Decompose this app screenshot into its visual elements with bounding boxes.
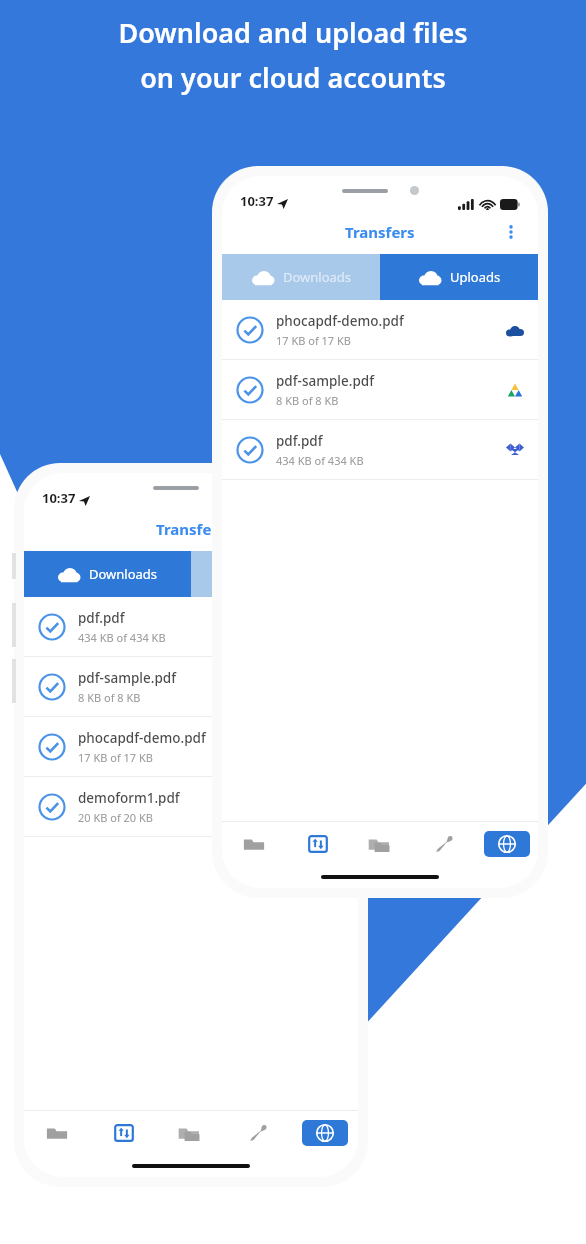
staticText: Download and upload files — [118, 14, 468, 51]
staticText: pdf.pdf — [78, 609, 125, 627]
staticText: 10:37 — [42, 489, 76, 507]
button[interactable]: Files — [24, 1111, 90, 1155]
button[interactable]: Settings — [224, 1111, 291, 1155]
button[interactable]: demoform1.pdf — [24, 777, 358, 837]
staticText: 17 KB of 17 KB — [78, 750, 153, 765]
staticText: demoform1.pdf — [78, 789, 180, 807]
staticText: pdf-sample.pdf — [78, 669, 176, 687]
button[interactable]: Downloads — [24, 551, 191, 597]
button[interactable]: Browser — [484, 831, 530, 857]
button[interactable]: pdf-sample.pdf — [222, 360, 538, 420]
staticText: Transfers — [156, 519, 226, 539]
staticText: phocapdf-demo.pdf — [78, 729, 206, 747]
button[interactable]: Remote files — [349, 822, 412, 866]
staticText: 20 KB of 20 KB — [78, 810, 153, 825]
staticText: Transfers — [345, 222, 415, 242]
staticText: 434 KB of 434 KB — [276, 453, 364, 468]
staticText: Uploads — [450, 268, 501, 286]
staticText: phocapdf-demo.pdf — [276, 312, 404, 330]
staticText: 8 KB of 8 KB — [78, 690, 141, 705]
button[interactable]: Remote files — [157, 1111, 224, 1155]
button[interactable]: Uploads — [191, 551, 358, 597]
button[interactable]: Files — [222, 822, 286, 866]
button[interactable]: Browser — [302, 1120, 348, 1146]
button[interactable]: pdf.pdf — [222, 420, 538, 480]
button[interactable]: Settings — [412, 822, 475, 866]
button[interactable]: pdf-sample.pdf — [24, 657, 358, 717]
staticText: on your cloud accounts — [140, 59, 446, 96]
button[interactable]: More options — [494, 215, 528, 249]
button[interactable]: Uploads — [380, 254, 538, 300]
staticText: pdf.pdf — [276, 432, 323, 450]
button[interactable]: phocapdf-demo.pdf — [24, 717, 358, 777]
staticText: 17 KB of 17 KB — [276, 333, 351, 348]
button[interactable]: Transfers — [286, 822, 349, 866]
button[interactable]: phocapdf-demo.pdf — [222, 300, 538, 360]
button[interactable]: pdf.pdf — [24, 597, 358, 657]
button[interactable]: Transfers — [90, 1111, 157, 1155]
staticText: pdf-sample.pdf — [276, 372, 374, 390]
staticText: 10:37 — [240, 192, 274, 210]
button[interactable]: Downloads — [222, 254, 380, 300]
staticText: 434 KB of 434 KB — [78, 630, 166, 645]
staticText: Downloads — [89, 565, 158, 583]
staticText: Downloads — [283, 268, 352, 286]
staticText: 8 KB of 8 KB — [276, 393, 339, 408]
